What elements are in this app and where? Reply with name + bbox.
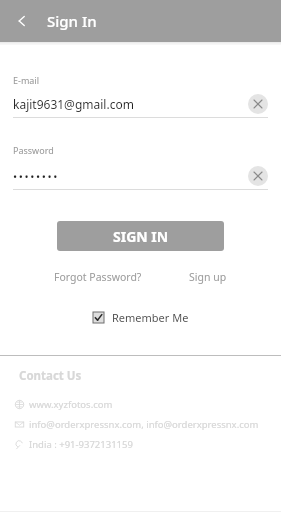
staticText: Forgot Password?	[54, 270, 142, 284]
staticText: E-mail	[13, 74, 40, 86]
button[interactable]: Sign up	[187, 267, 229, 287]
staticText: Sign In	[47, 11, 97, 31]
staticText: ••••••••	[13, 169, 59, 184]
staticText: Password	[13, 144, 54, 156]
button[interactable]: Forgot Password?	[52, 267, 144, 287]
staticText: Contact Us	[19, 368, 82, 384]
button[interactable]: SIGN IN	[57, 221, 224, 251]
button[interactable]: Clear Password	[248, 166, 268, 186]
button[interactable]: India : +91-9372131159	[0, 438, 281, 451]
button[interactable]: Remember Me	[89, 307, 193, 328]
staticText: SIGN IN	[113, 227, 169, 246]
staticText: Remember Me	[112, 310, 189, 325]
staticText: kajit9631@gmail.com	[13, 96, 134, 112]
staticText: India : +91-9372131159	[29, 438, 133, 451]
button[interactable]: Back	[7, 6, 37, 36]
button[interactable]: Clear E-mail	[248, 94, 268, 114]
button[interactable]: info@orderxpressnx.com, info@orderxpress…	[0, 418, 281, 431]
button[interactable]: www.xyzfotos.com	[0, 398, 281, 411]
staticText: www.xyzfotos.com	[29, 398, 113, 411]
staticText: info@orderxpressnx.com, info@orderxpress…	[29, 418, 259, 431]
staticText: Sign up	[189, 270, 227, 284]
